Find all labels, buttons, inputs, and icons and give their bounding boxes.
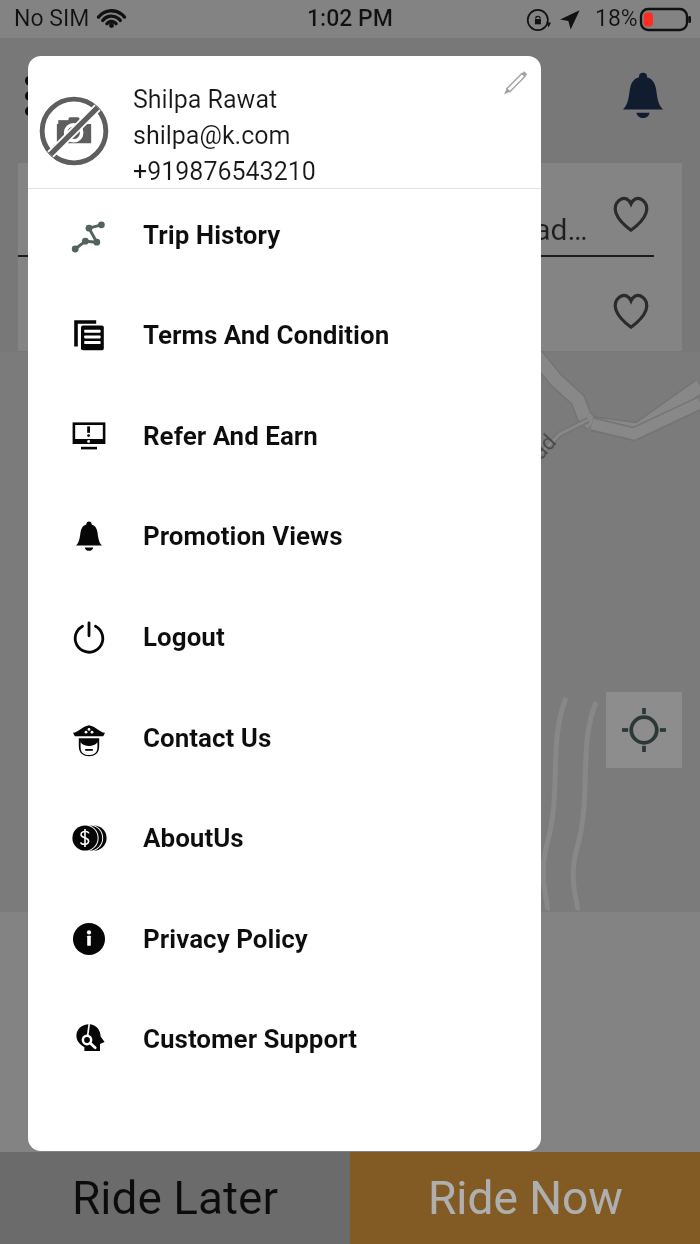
button[interactable]: Favourite pickup xyxy=(603,185,659,241)
staticText: AboutUs xyxy=(143,823,244,853)
button[interactable]: Notifications xyxy=(609,61,677,129)
button[interactable]: Contact Us xyxy=(28,688,541,788)
staticText: Shilpa Rawat xyxy=(133,85,278,114)
staticText: shilpa@k.com xyxy=(133,121,291,150)
staticText: 18% xyxy=(595,5,638,32)
staticText: Privacy Policy xyxy=(143,924,308,954)
button[interactable]: Ride Now xyxy=(350,1152,700,1244)
staticText: Ride Later xyxy=(72,1171,279,1225)
staticText: No SIM xyxy=(14,5,90,32)
button[interactable]: Edit profile xyxy=(491,58,539,106)
button[interactable]: Favourite drop xyxy=(603,282,659,338)
button[interactable]: My location xyxy=(606,692,682,768)
button[interactable]: Promotion Views xyxy=(28,486,541,586)
button[interactable]: Trip History xyxy=(28,185,541,285)
staticText: Customer Support xyxy=(143,1024,358,1054)
staticText: Contact Us xyxy=(143,723,272,753)
staticText: Road xyxy=(508,429,562,484)
staticText: Refer And Earn xyxy=(143,421,318,451)
button[interactable]: Terms And Condition xyxy=(28,285,541,385)
button[interactable]: Logout xyxy=(28,587,541,687)
staticText: Trip History xyxy=(143,220,281,250)
staticText: 1:02 PM xyxy=(307,5,393,32)
staticText: +919876543210 xyxy=(133,157,316,186)
staticText: Ride Now xyxy=(428,1171,623,1225)
staticText: Promotion Views xyxy=(143,521,343,551)
button[interactable]: Menu xyxy=(2,68,58,124)
button[interactable]: Ride Later xyxy=(0,1152,350,1244)
button[interactable]: Customer Support xyxy=(28,989,541,1089)
button[interactable]: Privacy Policy xyxy=(28,889,541,989)
button[interactable]: Refer And Earn xyxy=(28,386,541,486)
staticText: Terms And Condition xyxy=(143,320,390,350)
button[interactable]: AboutUs xyxy=(28,788,541,888)
staticText: Logout xyxy=(143,622,225,652)
staticText: Where would you like to go ahead… xyxy=(122,212,588,247)
